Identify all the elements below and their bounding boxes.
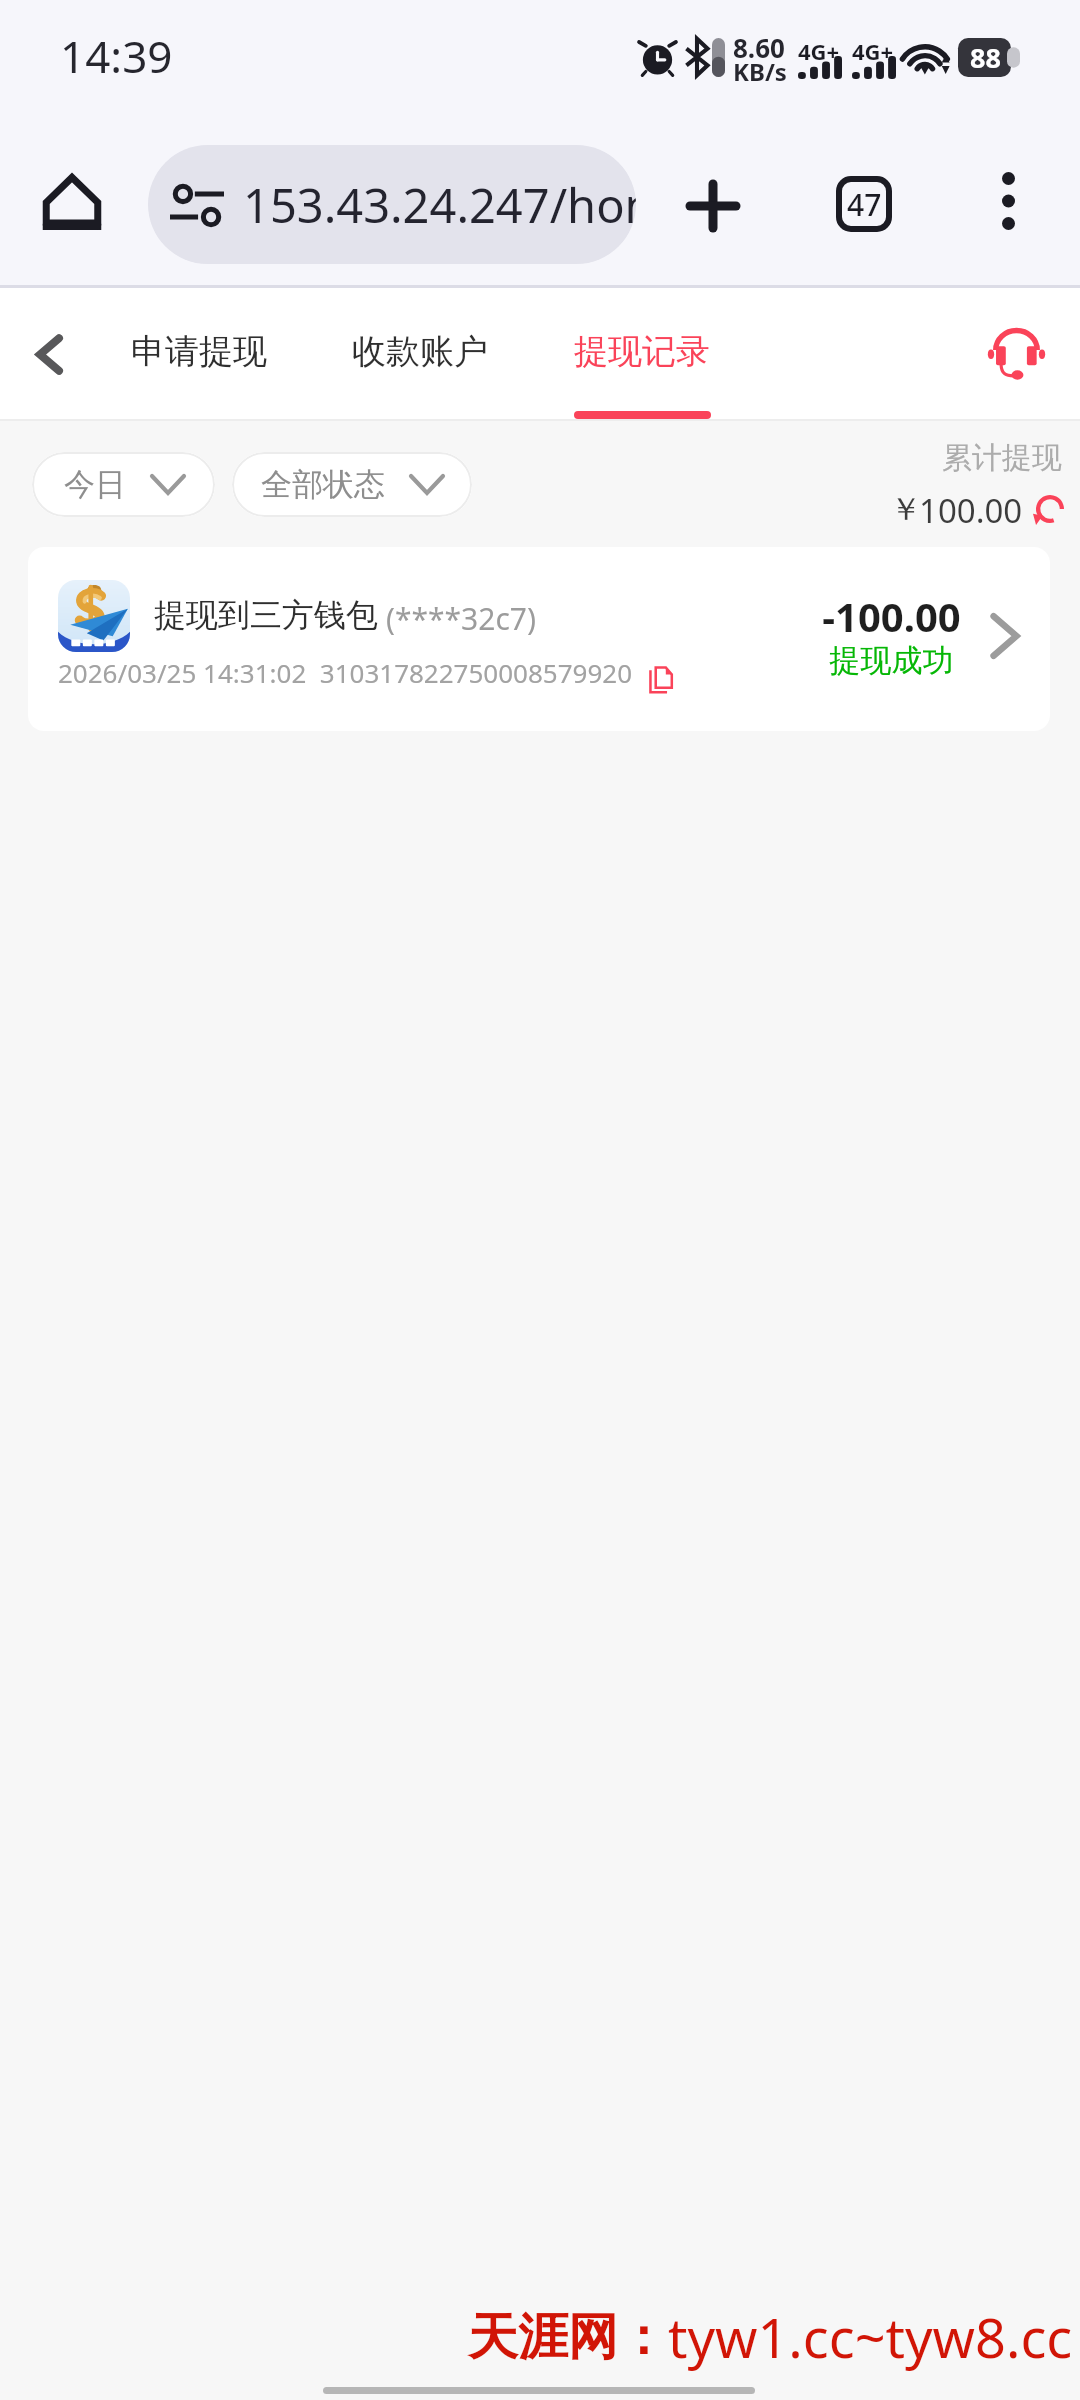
staticText: 提现到三方钱包 (154, 595, 378, 635)
staticText: 8.60 (733, 30, 785, 65)
staticText: 申请提现 (131, 330, 267, 373)
staticText: 收款账户 (352, 330, 488, 373)
staticText: 天涯网： (468, 2306, 668, 2369)
staticText: 提现成功 (793, 641, 990, 680)
button[interactable]: 收款账户 (325, 301, 515, 401)
staticText: 今日 (64, 465, 126, 504)
staticText: 提现记录 (574, 330, 710, 373)
button[interactable]: 申请提现 (104, 301, 294, 401)
staticText: 2026/03/25 14:31:02 31031782275000857992… (58, 655, 633, 690)
button[interactable]: 今日 (32, 452, 215, 517)
button[interactable]: Tabs (824, 164, 904, 244)
staticText: 全部状态 (261, 465, 385, 504)
button[interactable]: Back (0, 288, 92, 419)
button[interactable]: Address bar (148, 145, 636, 264)
staticText: tyw1.cc~tyw8.cc (668, 2300, 1073, 2374)
staticText: 累计提现 (942, 439, 1062, 477)
staticText: 14:39 (60, 26, 173, 86)
staticText: -100.00 (793, 589, 990, 643)
staticText: 153.43.24.247/hon (243, 173, 636, 237)
button[interactable]: New tab (673, 166, 753, 246)
button[interactable]: 提现记录 (547, 301, 737, 401)
staticText: 4G+ (798, 36, 840, 66)
staticText: 88 (970, 39, 1001, 76)
button[interactable]: Copy order number (638, 657, 684, 703)
button[interactable]: More options (972, 165, 1044, 237)
staticText: 100.00 (919, 488, 1023, 533)
staticText: 4G+ (852, 36, 894, 66)
button[interactable]: Customer service (962, 302, 1068, 406)
staticText: KB/s (733, 55, 787, 88)
button[interactable]: Refresh (1028, 487, 1072, 531)
staticText: ￥ (890, 489, 922, 529)
button[interactable]: Home (36, 166, 108, 238)
button[interactable]: 提现到三方钱包 (28, 547, 1050, 731)
button[interactable]: 全部状态 (232, 452, 472, 517)
staticText: (****32c7) (386, 598, 536, 639)
staticText: 47 (847, 184, 882, 225)
